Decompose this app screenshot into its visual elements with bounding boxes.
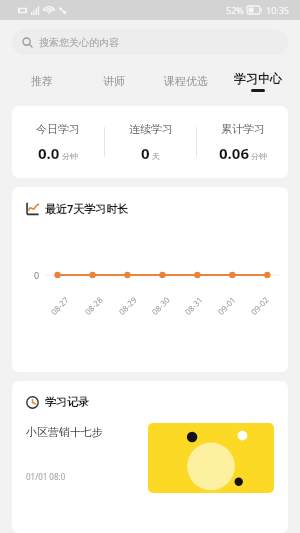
staticText: 09-02 xyxy=(248,294,271,317)
staticText: 累计学习 xyxy=(221,122,265,136)
staticText: 讲师 xyxy=(103,74,125,88)
staticText: 最近7天学习时长 xyxy=(45,201,129,216)
staticText: 课程优选 xyxy=(164,74,208,88)
staticText: 搜索您关心的内容 xyxy=(39,36,119,49)
button[interactable]: 小区营销十七步 xyxy=(26,423,274,493)
staticText: 天 xyxy=(152,151,160,161)
staticText: 分钟 xyxy=(251,151,267,161)
staticText: 10:35 xyxy=(266,4,290,16)
staticText: 推荐 xyxy=(31,74,53,88)
staticText: 09-01 xyxy=(215,294,238,317)
staticText: 0.0 xyxy=(38,143,60,163)
button[interactable]: 推荐 xyxy=(6,64,78,98)
staticText: 0 xyxy=(141,143,150,163)
staticText: 08-27 xyxy=(48,294,71,317)
staticText: 0.06 xyxy=(219,143,249,163)
button[interactable]: 今日学习 xyxy=(12,106,288,178)
button[interactable]: 讲师 xyxy=(78,64,150,98)
staticText: 分钟 xyxy=(62,151,78,161)
staticText: 08-28 xyxy=(82,294,105,317)
staticText: 学习中心 xyxy=(234,71,282,86)
button[interactable]: 搜索您关心的内容 xyxy=(12,29,288,55)
staticText: 连续学习 xyxy=(129,122,173,136)
staticText: 0 xyxy=(34,269,40,281)
staticText: 08-30 xyxy=(149,294,172,317)
staticText: 08-29 xyxy=(116,294,139,317)
staticText: 小区营销十七步 xyxy=(26,425,103,439)
staticText: 52% xyxy=(226,4,244,16)
button[interactable]: 学习中心 xyxy=(222,64,294,98)
staticText: 今日学习 xyxy=(36,122,80,136)
button[interactable]: 课程优选 xyxy=(150,64,222,98)
staticText: 08-31 xyxy=(182,294,205,317)
staticText: 学习记录 xyxy=(45,395,89,409)
staticText: 01/01 08:0 xyxy=(26,471,66,482)
